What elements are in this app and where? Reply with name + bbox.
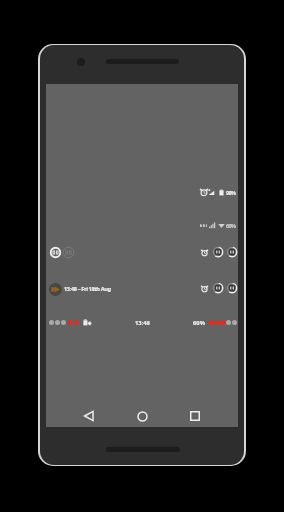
- button[interactable]: Page indicator and charging: [49, 317, 92, 328]
- button[interactable]: Home: [136, 410, 148, 422]
- button[interactable]: 60 percent and page indicator: [46, 317, 237, 328]
- button[interactable]: Timers: [49, 246, 75, 259]
- button[interactable]: Status bar, 98 percent battery: [46, 187, 236, 197]
- button[interactable]: Back: [83, 410, 95, 422]
- staticText: 98%: [226, 189, 236, 196]
- button[interactable]: Alarms: [46, 245, 238, 259]
- staticText: 60%: [226, 222, 236, 229]
- staticText: 13:48 – Fri 18th Aug: [64, 285, 111, 293]
- button[interactable]: 13:48 Fri 18th Aug notification: [49, 282, 111, 296]
- button[interactable]: Alarms second row: [46, 281, 238, 295]
- button[interactable]: Recent apps: [189, 410, 201, 422]
- button[interactable]: Status bar, 60 percent battery: [46, 220, 236, 230]
- staticText: 13:48: [135, 319, 150, 327]
- staticText: 60%: [193, 319, 205, 327]
